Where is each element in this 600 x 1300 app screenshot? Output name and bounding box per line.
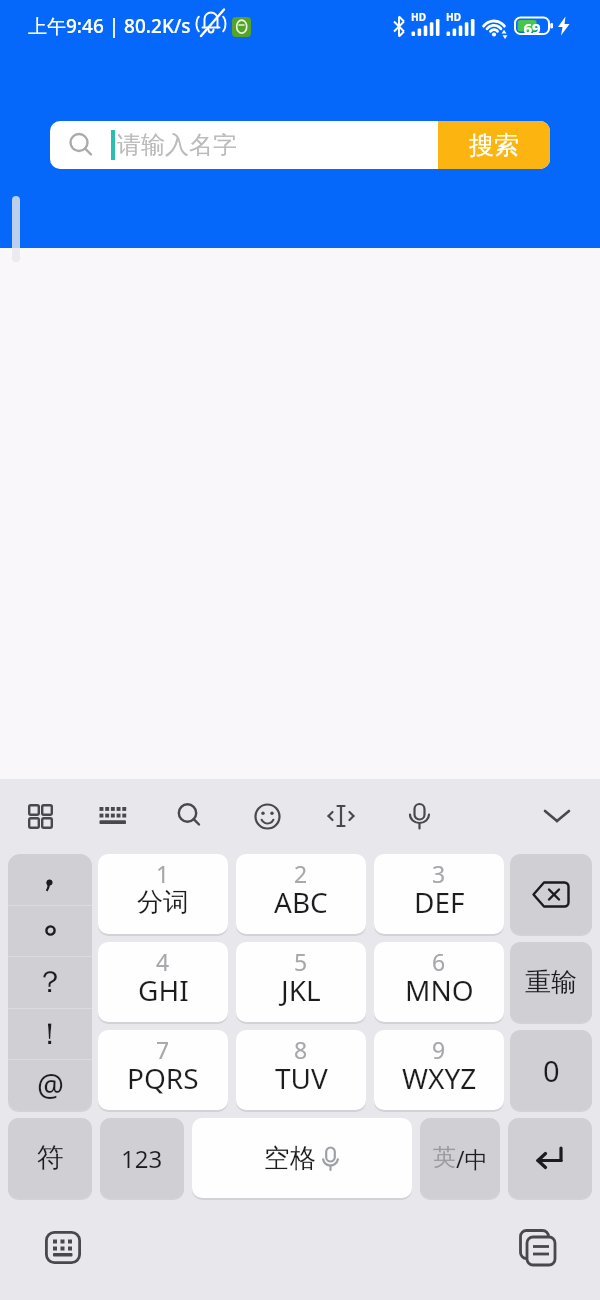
button[interactable] (510, 854, 592, 934)
staticText: DEF (414, 883, 465, 921)
staticText: /中 (456, 1143, 488, 1174)
button[interactable]: 0 (510, 1030, 592, 1110)
button[interactable] (508, 1118, 592, 1198)
button[interactable] (519, 1229, 557, 1267)
button[interactable]: 8 (236, 1030, 366, 1110)
button[interactable]: ！ (8, 1008, 92, 1059)
staticText: ？ (35, 963, 65, 1001)
staticText: WXYZ (402, 1059, 477, 1097)
button[interactable]: 7 (98, 1030, 228, 1110)
staticText: 4 (156, 946, 170, 972)
button[interactable]: 9 (374, 1030, 504, 1110)
staticText: HD (446, 10, 461, 24)
button[interactable] (327, 803, 355, 829)
button[interactable]: ？ (8, 956, 92, 1007)
staticText: 1 (156, 858, 170, 884)
staticText: HD (411, 10, 426, 24)
staticText: 分词 (137, 886, 189, 919)
button[interactable]: 5 (236, 942, 366, 1022)
staticText: 符 (37, 1141, 64, 1175)
staticText: 123 (121, 1142, 163, 1175)
staticText: GHI (138, 971, 189, 1009)
staticText: 搜索 (469, 130, 519, 161)
button[interactable]: 符 (8, 1118, 92, 1198)
staticText: 69 (519, 18, 545, 33)
button[interactable] (254, 803, 281, 830)
staticText: 3 (432, 858, 446, 884)
button[interactable] (28, 803, 54, 829)
button[interactable]: 6 (374, 942, 504, 1022)
staticText: 上午9:46 | 80.2K/s (28, 13, 191, 39)
button[interactable] (177, 803, 203, 829)
button[interactable]: 123 (100, 1118, 184, 1198)
button[interactable]: 2 (236, 854, 366, 934)
staticText: MNO (405, 971, 474, 1009)
staticText: 2 (294, 858, 308, 884)
button[interactable] (8, 854, 92, 905)
button[interactable]: 3 (374, 854, 504, 934)
staticText: ！ (35, 1015, 65, 1053)
staticText: JKL (281, 971, 321, 1009)
staticText: 9 (432, 1034, 446, 1060)
button[interactable]: @ (8, 1059, 92, 1110)
button[interactable] (543, 808, 571, 824)
staticText: 5 (294, 946, 308, 972)
button[interactable]: 空格 (192, 1118, 412, 1198)
staticText: 请输入名字 (117, 130, 237, 160)
staticText: 英 (433, 1143, 456, 1172)
staticText: PQRS (127, 1059, 199, 1097)
button[interactable] (45, 1231, 81, 1264)
button[interactable]: 4 (98, 942, 228, 1022)
staticText: @ (37, 1064, 64, 1105)
staticText: 重输 (525, 966, 577, 999)
button[interactable]: 英 (420, 1118, 500, 1198)
button[interactable]: 搜索 (438, 121, 550, 169)
staticText: 空格 (264, 1142, 316, 1175)
button[interactable]: 1 (98, 854, 228, 934)
button[interactable] (407, 803, 432, 830)
staticText: 6 (432, 946, 446, 972)
staticText: 8 (294, 1034, 308, 1060)
staticText: 7 (156, 1034, 170, 1060)
button[interactable] (99, 806, 127, 826)
button[interactable] (8, 905, 92, 956)
staticText: 0 (543, 1051, 560, 1090)
staticText: ABC (274, 883, 328, 921)
button[interactable]: 重输 (510, 942, 592, 1022)
staticText: TUV (275, 1059, 328, 1097)
